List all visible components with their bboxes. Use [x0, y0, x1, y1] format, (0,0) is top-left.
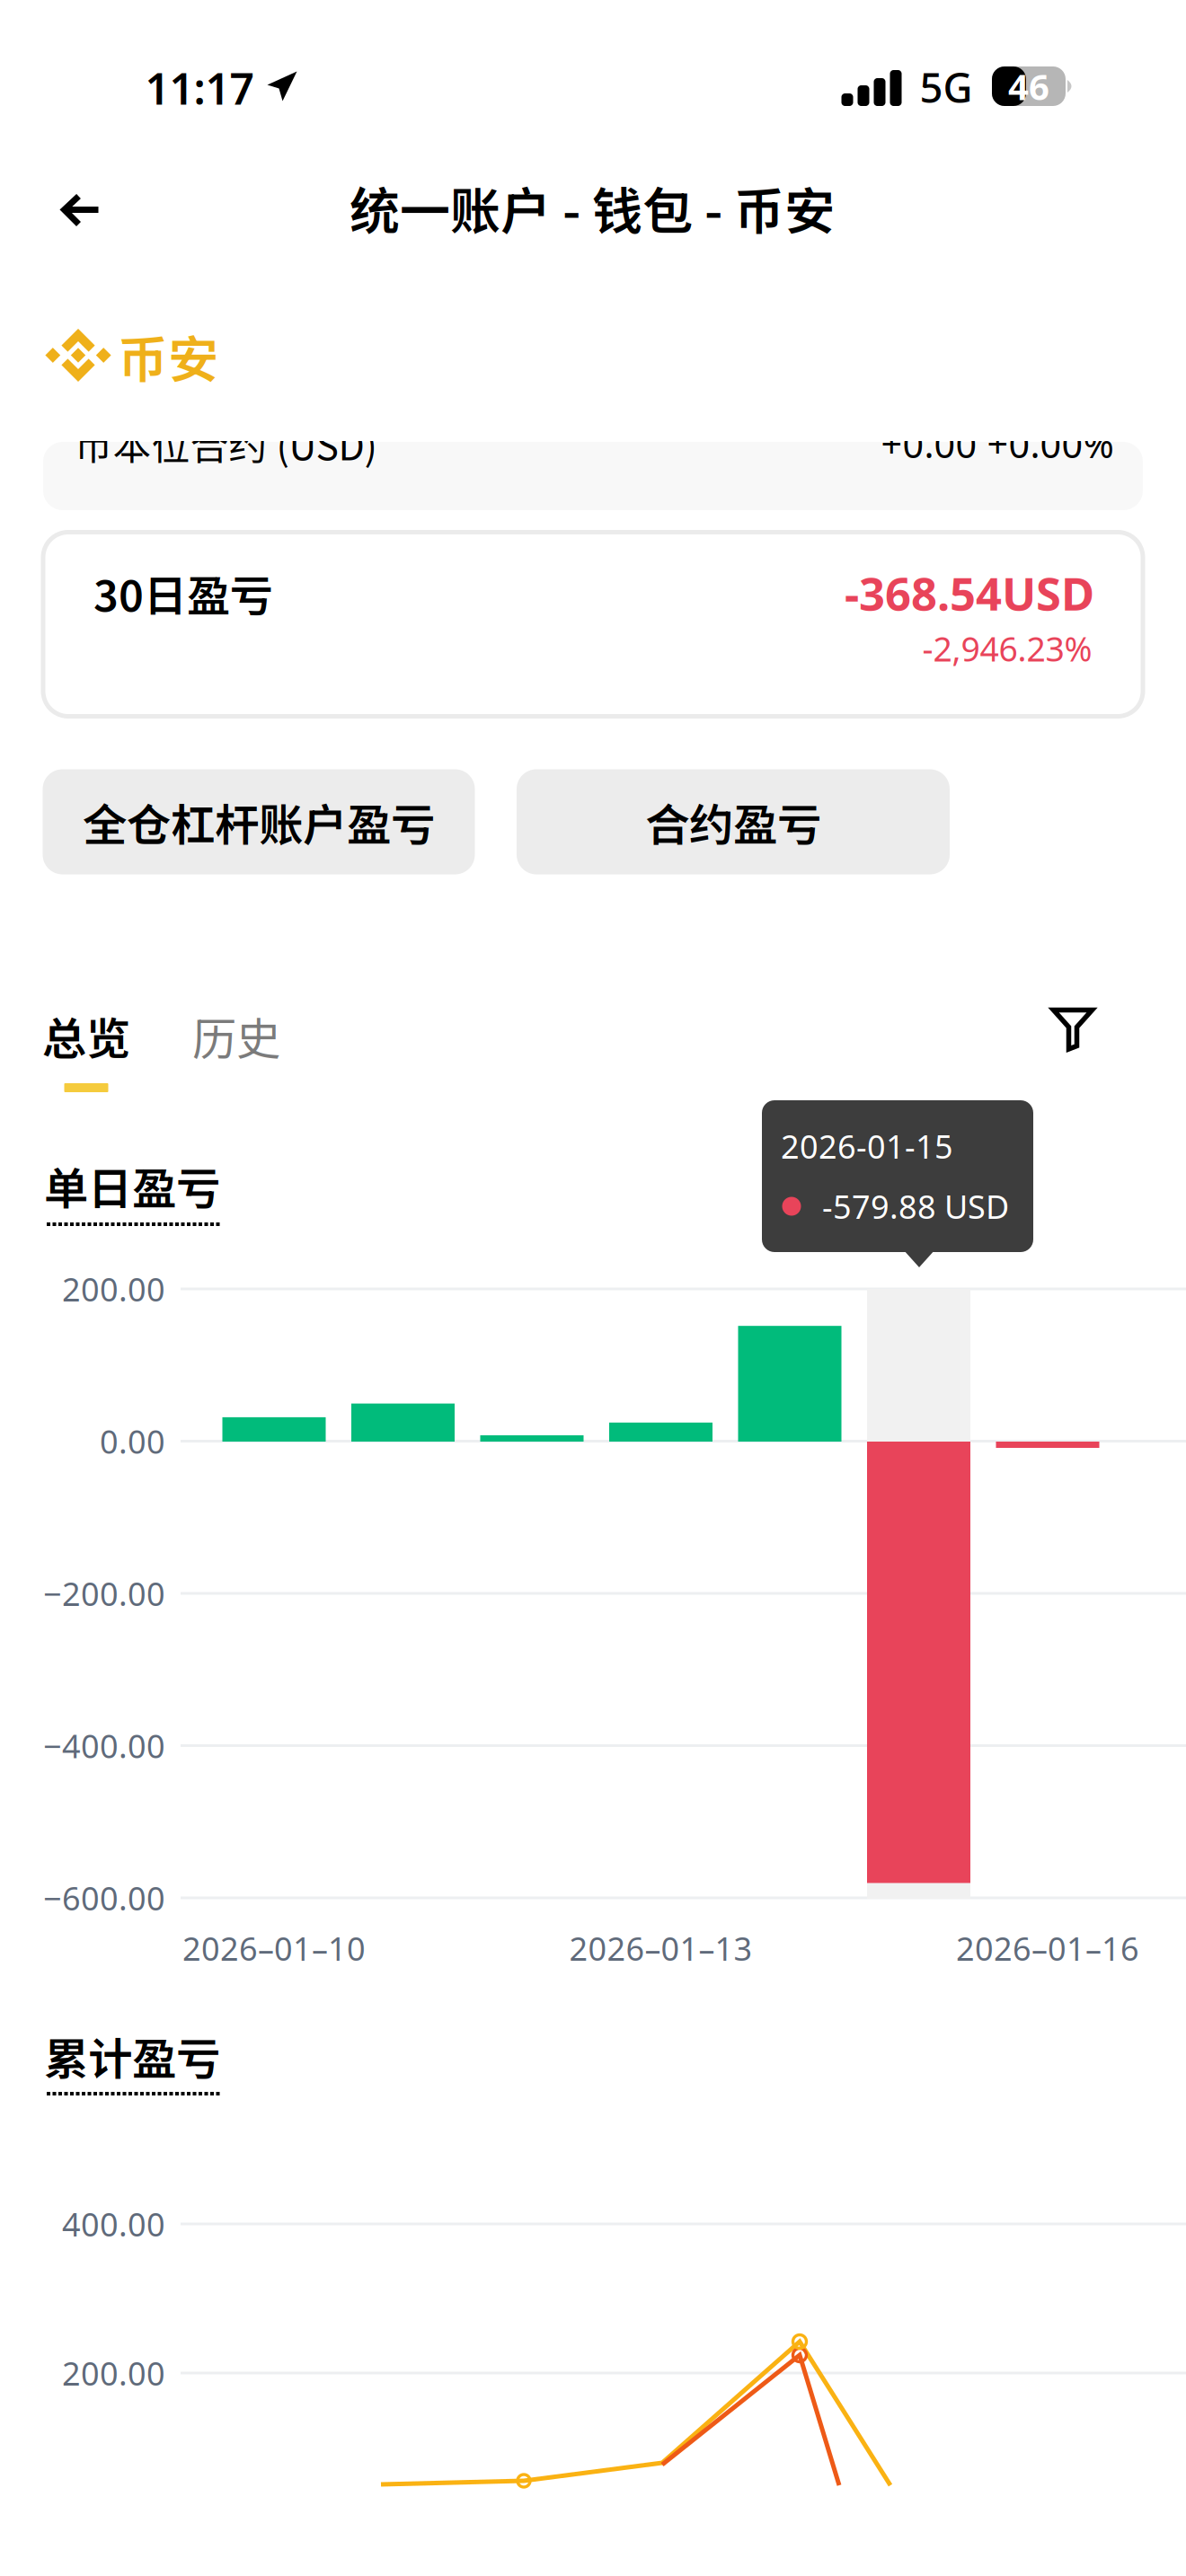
staticText: 46: [1008, 62, 1049, 110]
staticText: 总览: [42, 1004, 130, 1068]
staticText: 30日盈亏: [93, 562, 273, 624]
staticText: 400.00: [62, 2202, 165, 2245]
staticText: 统一账户 - 钱包 - 币安: [350, 171, 835, 244]
staticText: -579.88 USD: [822, 1185, 1009, 1228]
staticText: 累计盈亏: [44, 2024, 220, 2088]
staticText: 2026–01–16: [956, 1927, 1139, 1970]
staticText: 单日盈亏: [44, 1154, 220, 1218]
staticText: −200.00: [43, 1572, 165, 1615]
staticText: 合约盈亏: [645, 790, 821, 854]
staticText: 2026-01-15: [781, 1125, 953, 1168]
button[interactable]: 合约盈亏: [517, 769, 950, 874]
staticText: 2026–01–10: [182, 1927, 366, 1970]
staticText: +0.00 +0.00%: [881, 419, 1114, 468]
staticText: 5G: [920, 60, 973, 114]
staticText: -368.54USD: [845, 563, 1094, 623]
staticText: −400.00: [43, 1724, 165, 1767]
button[interactable]: Back: [27, 161, 135, 260]
staticText: −600.00: [43, 1876, 165, 1919]
staticText: 2026–01–13: [569, 1927, 752, 1970]
staticText: 0.00: [100, 1420, 165, 1463]
staticText: -2,946.23%: [922, 626, 1092, 671]
staticText: 币本位合约 (USD): [74, 416, 377, 471]
button[interactable]: 历史: [164, 1003, 308, 1068]
staticText: 币安: [118, 319, 218, 392]
staticText: 200.00: [62, 1267, 165, 1310]
staticText: 全仓杠杆账户盈亏: [83, 790, 435, 854]
staticText: 11:17: [145, 59, 254, 117]
button[interactable]: 总览: [0, 1003, 173, 1140]
button[interactable]: 全仓杠杆账户盈亏: [43, 769, 475, 874]
staticText: 历史: [192, 1004, 280, 1068]
button[interactable]: Filter: [1023, 984, 1122, 1074]
staticText: 200.00: [62, 2352, 165, 2394]
